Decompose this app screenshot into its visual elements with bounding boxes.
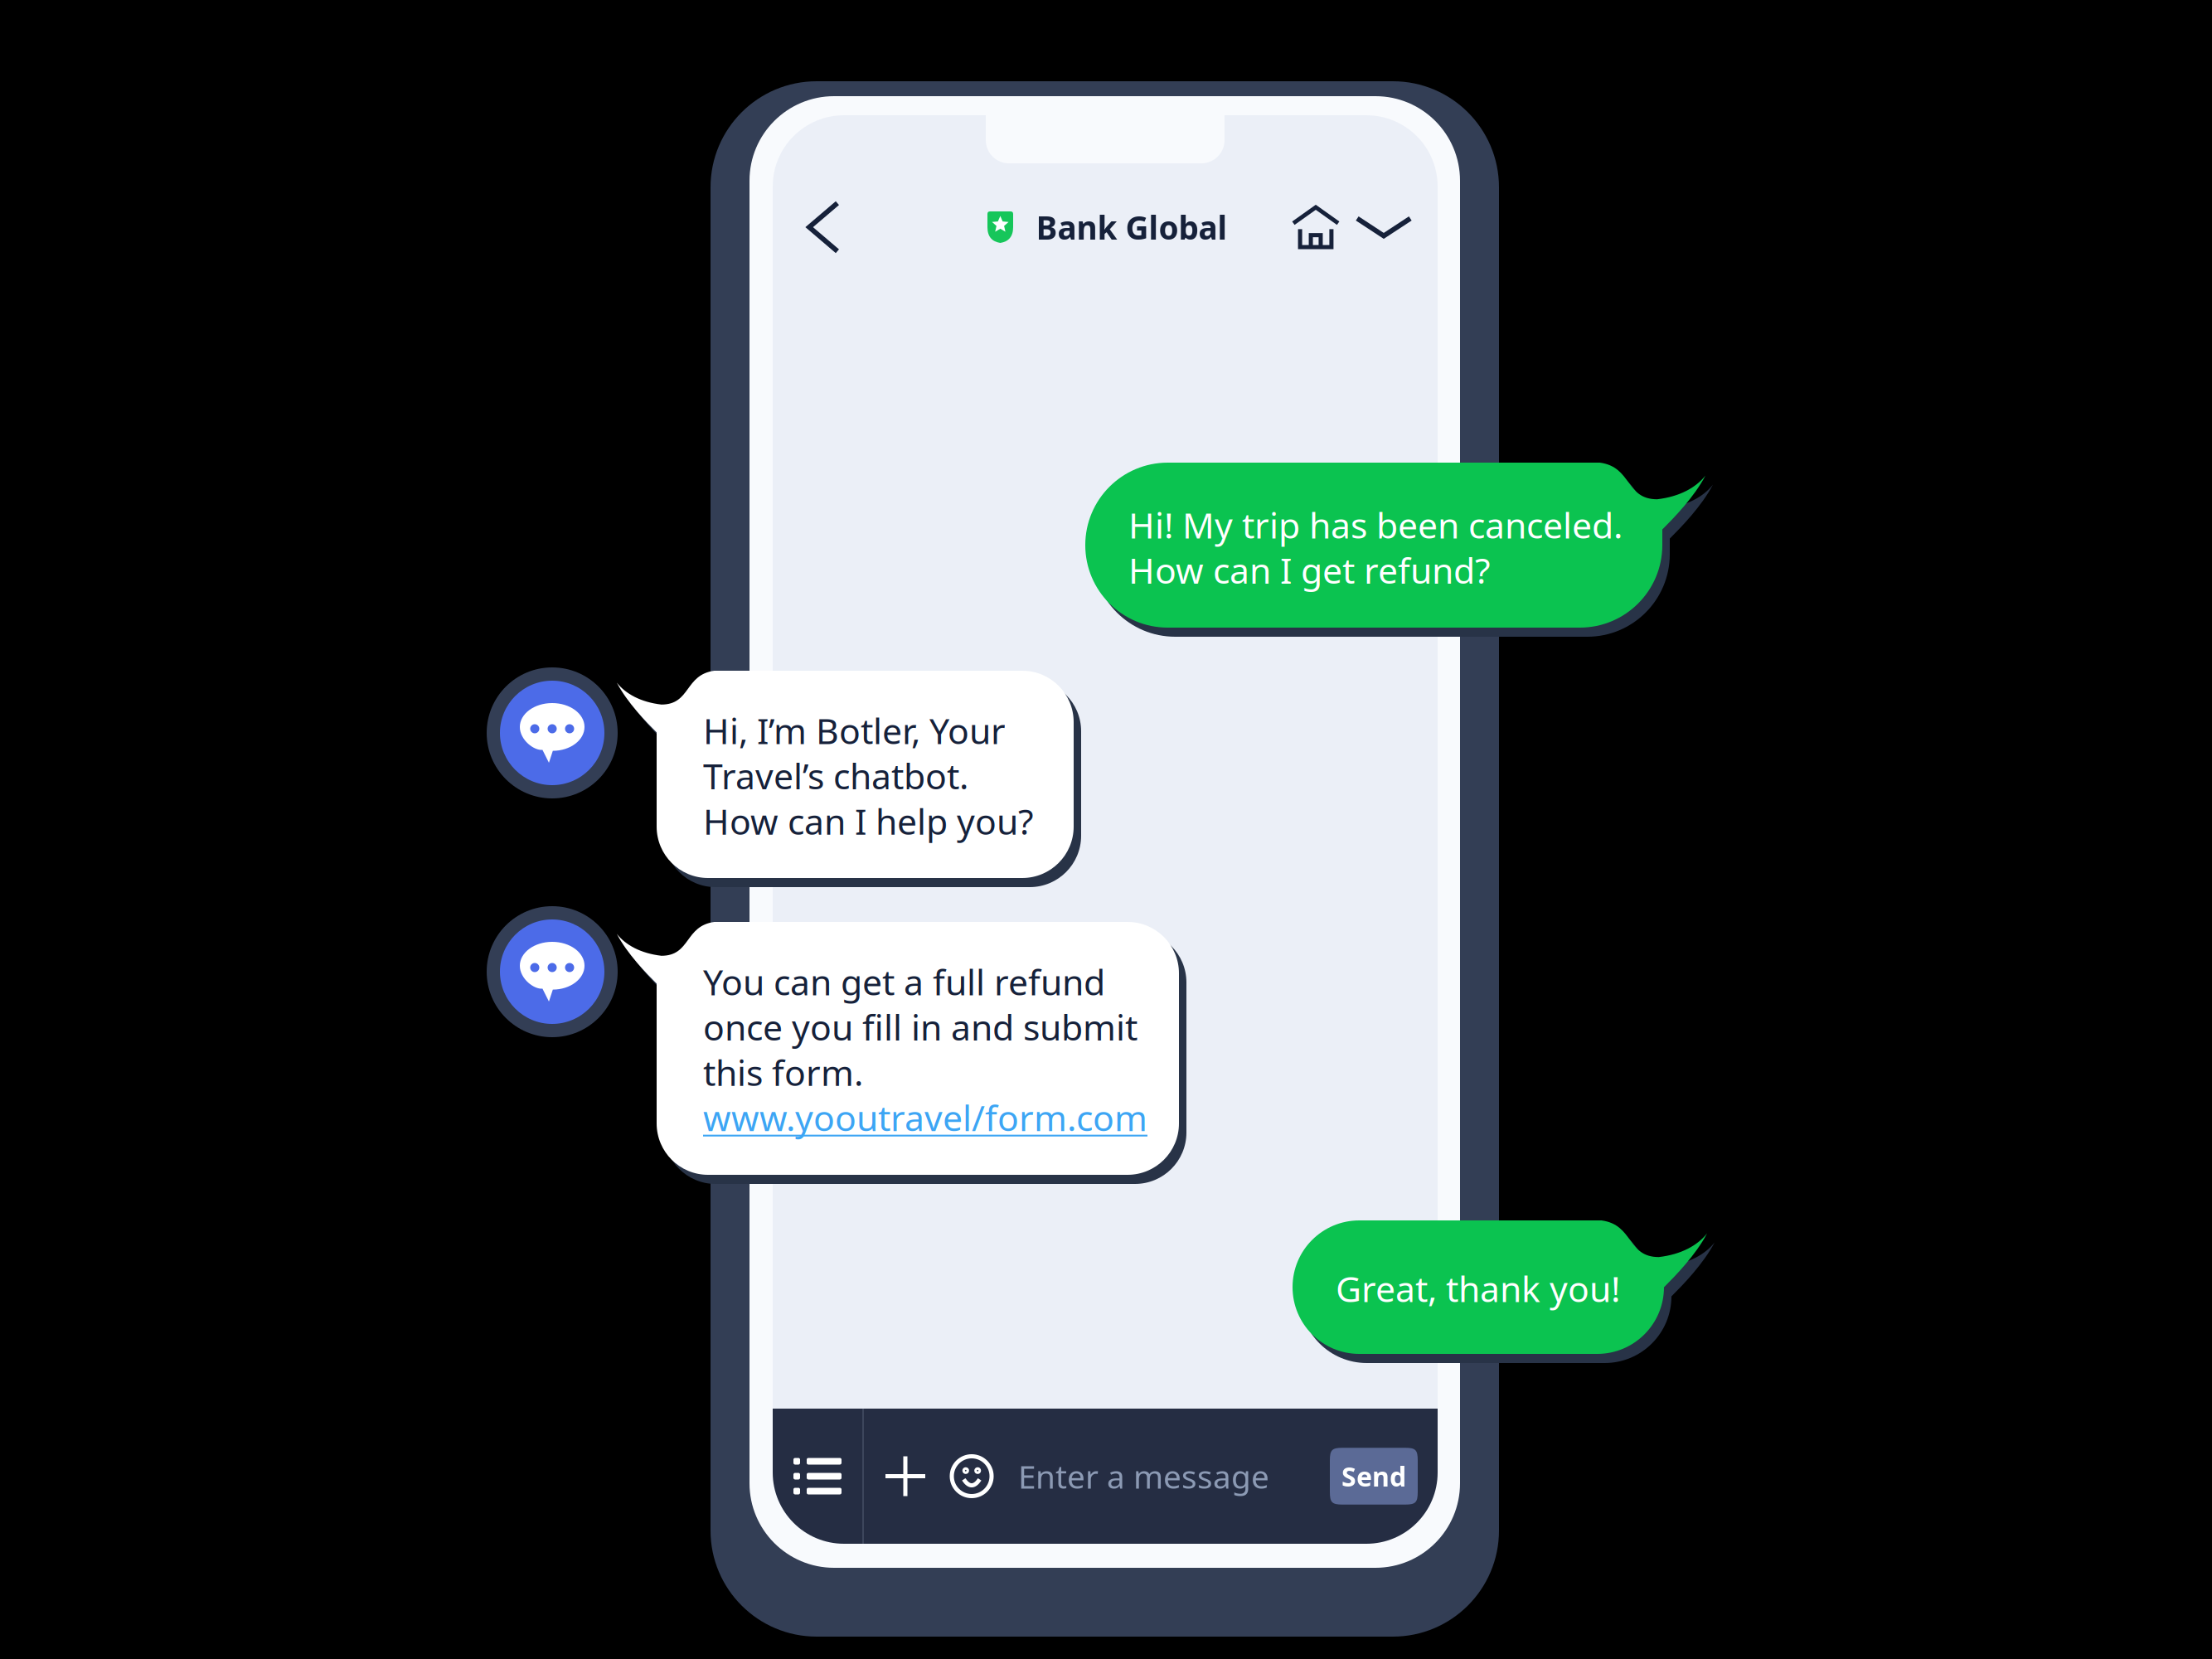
staticText: Bank Global [1036, 206, 1227, 248]
button[interactable]: Home [1282, 177, 1350, 278]
button[interactable]: Emoji [947, 1409, 997, 1544]
button[interactable]: Send [1330, 1448, 1418, 1505]
button[interactable]: Quick replies [773, 1409, 862, 1544]
button[interactable]: www.yooutravel/form.com [703, 1094, 1147, 1141]
staticText: this form. [703, 1049, 863, 1096]
staticText: How can I help you? [703, 797, 1034, 844]
staticText: Great, thank you! [1336, 1265, 1620, 1312]
staticText: Hi, I’m Botler, Your [703, 707, 1006, 754]
staticText: Enter a message [1018, 1455, 1269, 1497]
button[interactable]: Minimize [1350, 179, 1418, 276]
button[interactable]: Add attachment [864, 1409, 947, 1544]
staticText: How can I get refund? [1128, 547, 1491, 594]
staticText: once you fill in and submit [703, 1003, 1138, 1050]
button[interactable]: Back [793, 177, 854, 277]
staticText: Hi! My trip has been canceled. [1128, 501, 1623, 548]
staticText: You can get a full refund [703, 958, 1105, 1005]
button[interactable]: Enter a message [997, 1409, 1269, 1544]
staticText: Travel’s chatbot. [703, 752, 968, 799]
staticText: www.yooutravel/form.com [703, 1094, 1147, 1141]
staticText: Send [1341, 1459, 1406, 1494]
